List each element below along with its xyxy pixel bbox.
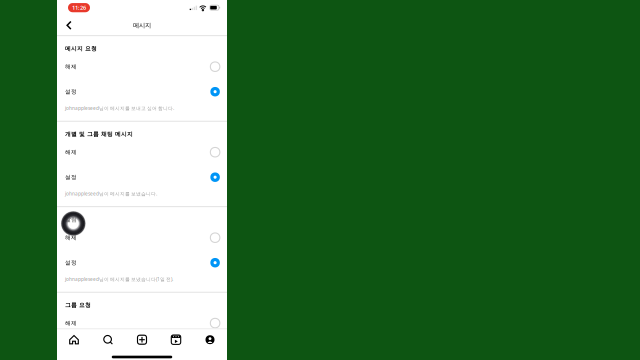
staticText: 해제 [65,63,77,70]
button[interactable]: Home [57,329,91,350]
button[interactable]: Create [125,329,159,350]
staticText: 그룹 요청 [65,301,91,309]
button[interactable]: Reels [159,329,193,350]
staticText: 알림 [65,216,77,223]
button[interactable]: Back [59,15,79,36]
staticText: 메시지 [133,21,151,29]
staticText: 설정 [65,174,77,181]
button[interactable]: 해제 [57,311,227,336]
staticText: johnappleseed님이 메시지를 보냈습니다(1일 전). [65,276,173,282]
staticText: 설정 [65,88,77,95]
staticText: 해제 [65,234,77,241]
staticText: 11:26 [72,4,86,11]
button[interactable]: 설정 [57,79,227,104]
button[interactable]: Search [91,329,125,350]
staticText: 해제 [65,320,77,327]
button[interactable]: 해제 [57,225,227,250]
staticText: 메시지 요청 [65,45,97,52]
staticText: 개별 및 그룹 채팅 메시지 [65,131,133,138]
staticText: 해제 [65,149,77,156]
staticText: johnappleseed님이 메시지를 보내고 싶어 합니다. [65,105,174,111]
staticText: johnappleseed님이 메시지를 보냈습니다. [65,190,157,197]
staticText: 설정 [65,259,77,266]
button[interactable]: Profile [193,329,227,350]
button[interactable]: 설정 [57,165,227,190]
button[interactable]: 해제 [57,54,227,79]
button[interactable]: 설정 [57,250,227,275]
button[interactable]: 해제 [57,140,227,165]
